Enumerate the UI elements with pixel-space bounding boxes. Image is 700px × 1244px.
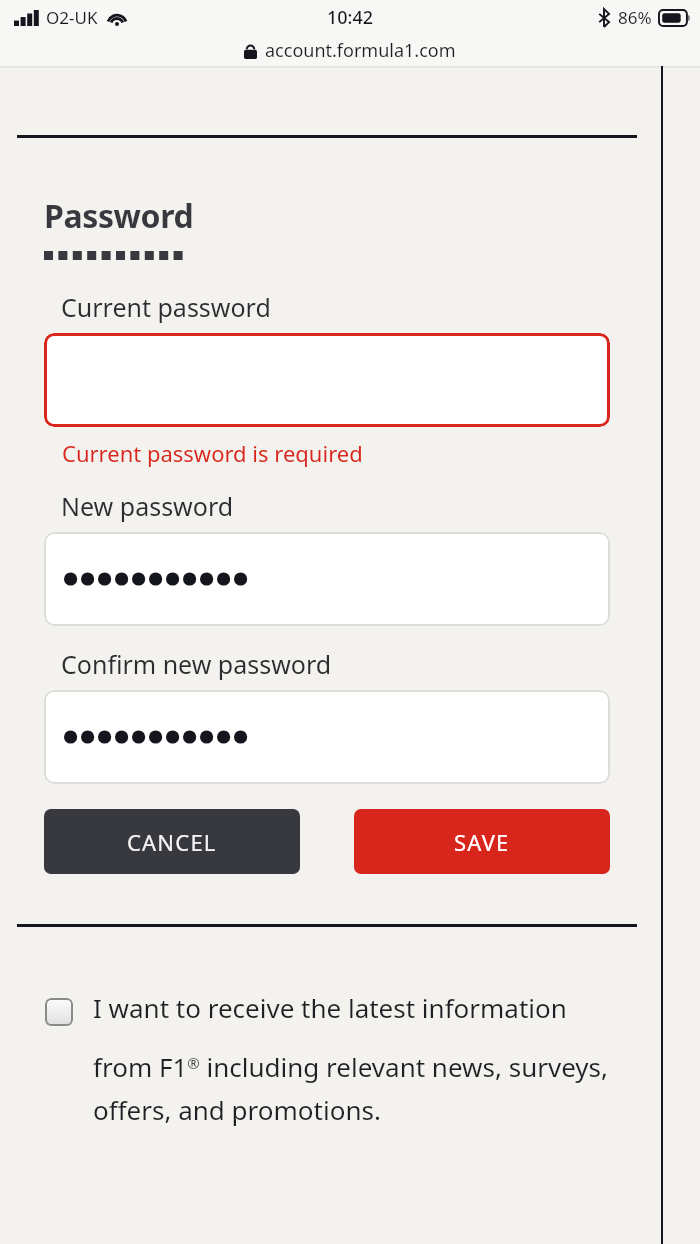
button[interactable] xyxy=(44,333,610,427)
button[interactable] xyxy=(44,532,610,626)
staticText: O2-UK xyxy=(46,6,98,29)
staticText: CANCEL xyxy=(127,827,217,857)
button[interactable]: CANCEL xyxy=(44,809,300,874)
staticText: Current password is required xyxy=(62,438,363,468)
button[interactable] xyxy=(44,690,610,784)
staticText: I want to receive the latest information… xyxy=(93,990,615,1127)
staticText: New password xyxy=(61,489,234,523)
button[interactable]: I want to receive the latest information… xyxy=(45,990,615,1127)
staticText: 86% xyxy=(618,6,652,29)
staticText: Current password xyxy=(61,290,271,324)
staticText: Password xyxy=(44,194,194,238)
staticText: account.formula1.com xyxy=(265,38,456,63)
staticText: 10:42 xyxy=(327,5,374,30)
button[interactable]: SAVE xyxy=(354,809,610,874)
staticText: SAVE xyxy=(454,827,510,857)
staticText: Confirm new password xyxy=(61,647,332,681)
